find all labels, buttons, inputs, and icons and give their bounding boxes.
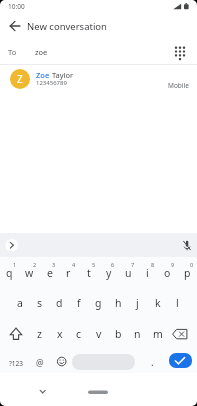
button[interactable]: p — [178, 263, 197, 283]
staticText: u — [125, 266, 132, 280]
staticText: Taylor — [52, 70, 74, 80]
staticText: f — [77, 296, 81, 310]
button[interactable]: w — [20, 263, 39, 283]
staticText: l — [176, 296, 179, 310]
button[interactable] — [5, 239, 18, 252]
button[interactable] — [6, 325, 26, 343]
staticText: 7 — [131, 261, 135, 268]
button[interactable]: o — [158, 263, 177, 283]
staticText: 10:00 — [8, 2, 25, 11]
button[interactable]: n — [128, 324, 147, 344]
staticText: r — [66, 266, 71, 280]
button[interactable] — [6, 17, 24, 35]
staticText: zoe — [35, 47, 48, 57]
staticText: x — [57, 327, 63, 341]
staticText: k — [155, 296, 161, 310]
staticText: 9 — [171, 261, 175, 268]
button[interactable]: ?123 — [4, 353, 28, 373]
button[interactable]: b — [109, 324, 128, 344]
staticText: y — [106, 266, 112, 280]
button[interactable]: e — [40, 263, 59, 283]
button[interactable]: x — [50, 324, 69, 344]
staticText: 3 — [52, 261, 56, 268]
button[interactable] — [0, 66, 197, 94]
button[interactable]: m — [148, 324, 167, 344]
staticText: 8 — [151, 261, 155, 268]
button[interactable]: k — [148, 293, 167, 313]
staticText: New conversation — [27, 20, 107, 33]
button[interactable]: a — [10, 293, 29, 313]
button[interactable]: s — [30, 293, 49, 313]
staticText: z — [37, 327, 42, 341]
staticText: Mobile — [168, 81, 189, 90]
staticText: j — [136, 296, 139, 310]
staticText: c — [76, 327, 82, 341]
staticText: 4 — [72, 261, 76, 268]
button[interactable]: f — [69, 293, 88, 313]
staticText: h — [115, 296, 122, 310]
staticText: n — [134, 327, 141, 341]
button[interactable]: . — [143, 352, 162, 372]
staticText: 6 — [111, 261, 115, 268]
staticText: b — [115, 327, 122, 341]
staticText: g — [95, 296, 102, 310]
button[interactable] — [171, 44, 188, 61]
button[interactable]: l — [168, 293, 187, 313]
button[interactable]: c — [69, 324, 88, 344]
staticText: Z — [17, 72, 23, 86]
staticText: 0 — [190, 261, 194, 268]
button[interactable]: t — [79, 263, 98, 283]
staticText: q — [6, 266, 13, 280]
staticText: m — [153, 327, 163, 341]
button[interactable]: q — [0, 263, 19, 283]
staticText: p — [184, 266, 191, 280]
button[interactable]: d — [50, 293, 69, 313]
staticText: @ — [36, 357, 44, 369]
button[interactable]: g — [89, 293, 108, 313]
button[interactable]: z — [30, 324, 49, 344]
staticText: s — [37, 296, 43, 310]
button[interactable]: v — [89, 324, 108, 344]
button[interactable]: u — [119, 263, 138, 283]
staticText: . — [151, 355, 154, 369]
button[interactable]: @ — [30, 353, 49, 373]
staticText: d — [56, 296, 63, 310]
staticText: 2 — [33, 261, 37, 268]
staticText: Zoe — [36, 70, 52, 80]
staticText: w — [25, 266, 34, 280]
staticText: t — [87, 266, 91, 280]
button[interactable] — [88, 388, 108, 396]
staticText: 123456789 — [36, 79, 67, 87]
button[interactable] — [180, 239, 194, 253]
staticText: a — [17, 296, 23, 310]
staticText: To — [8, 47, 17, 57]
staticText: v — [96, 327, 102, 341]
staticText: o — [164, 266, 171, 280]
button[interactable] — [171, 325, 191, 343]
button[interactable]: h — [109, 293, 128, 313]
staticText: ?123 — [9, 359, 23, 368]
button[interactable] — [169, 353, 192, 368]
staticText: i — [146, 266, 149, 280]
button[interactable]: i — [138, 263, 157, 283]
staticText: 1 — [13, 261, 17, 268]
button[interactable] — [72, 354, 135, 370]
button[interactable] — [36, 386, 49, 398]
staticText: e — [47, 266, 53, 280]
staticText: 5 — [92, 261, 96, 268]
button[interactable]: y — [99, 263, 118, 283]
button[interactable]: r — [59, 263, 78, 283]
button[interactable]: j — [128, 293, 147, 313]
button[interactable] — [55, 353, 69, 370]
